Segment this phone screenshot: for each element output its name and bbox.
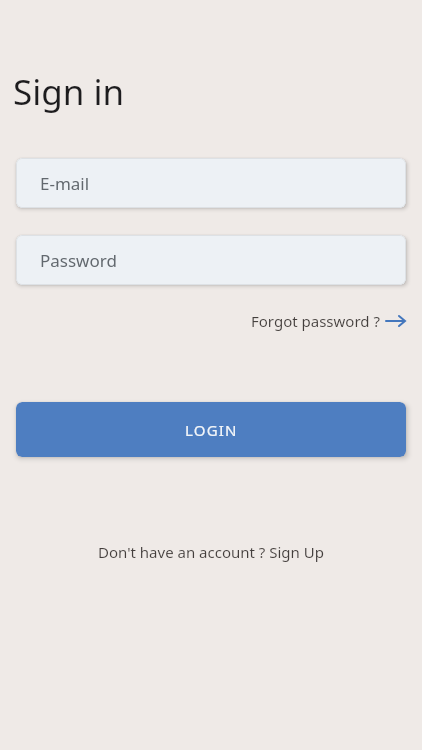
staticText: Forgot password ? (251, 311, 380, 331)
button[interactable]: LOGIN (16, 402, 406, 457)
button[interactable]: Password (16, 235, 406, 285)
staticText: LOGIN (185, 420, 238, 440)
staticText: Password (40, 249, 117, 272)
button[interactable]: Don't have an account ? Sign Up (98, 542, 324, 562)
button[interactable]: Forgot password ? (251, 311, 406, 331)
staticText: Sign in (13, 68, 125, 116)
button[interactable]: E-mail (16, 158, 406, 208)
staticText: E-mail (40, 172, 90, 195)
